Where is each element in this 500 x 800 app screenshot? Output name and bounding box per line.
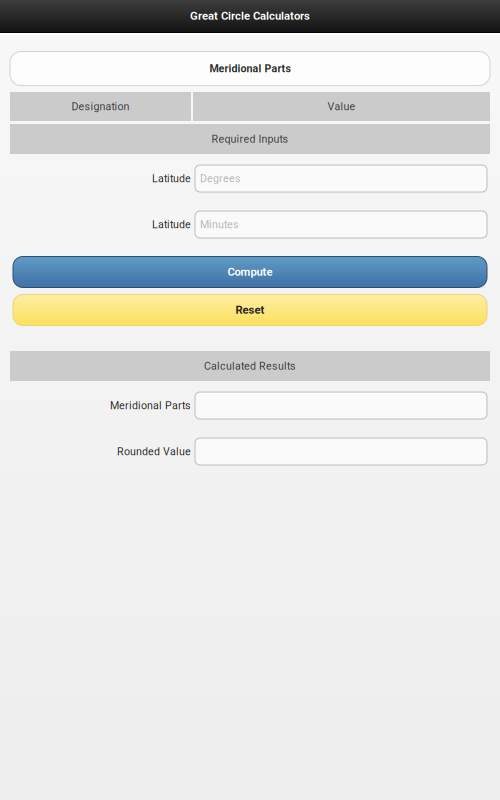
staticText: Degrees xyxy=(200,172,241,185)
staticText: Calculated Results xyxy=(204,360,296,372)
staticText: Meridional Parts xyxy=(110,399,191,412)
staticText: Rounded Value xyxy=(117,445,191,458)
staticText: Latitude xyxy=(152,218,191,231)
staticText: Latitude xyxy=(152,172,191,185)
button[interactable]: Reset xyxy=(0,294,500,325)
staticText: Meridional Parts xyxy=(209,62,290,75)
staticText: Reset xyxy=(235,303,264,317)
staticText: Great Circle Calculators xyxy=(190,9,310,23)
button[interactable]: Compute xyxy=(0,256,500,287)
staticText: Value xyxy=(327,100,355,113)
staticText: Compute xyxy=(227,265,272,279)
button[interactable]: Meridional Parts xyxy=(0,51,500,85)
staticText: Required Inputs xyxy=(211,133,288,145)
staticText: Minutes xyxy=(200,218,239,231)
staticText: Designation xyxy=(71,100,129,113)
